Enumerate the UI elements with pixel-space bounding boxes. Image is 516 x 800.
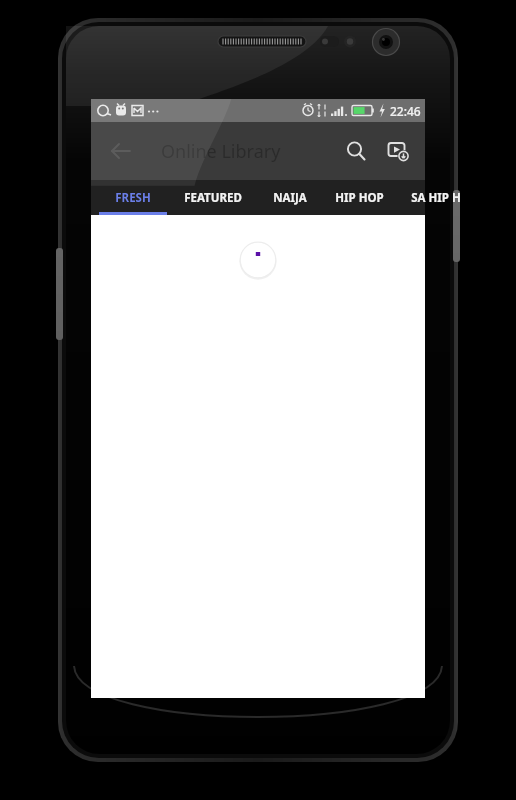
button[interactable]: HIP HOP <box>326 180 392 215</box>
staticText: FRESH <box>115 190 151 206</box>
staticText: NAIJA <box>273 190 307 206</box>
staticText: 22:46 <box>390 103 421 119</box>
staticText: Online Library <box>161 139 281 164</box>
button[interactable]: NAIJA <box>264 180 316 215</box>
button[interactable]: FRESH <box>105 180 161 215</box>
button[interactable]: Downloads <box>377 130 419 172</box>
staticText: FEATURED <box>184 190 242 206</box>
button[interactable]: FEATURED <box>173 180 253 215</box>
staticText: HIP HOP <box>335 190 384 206</box>
button[interactable]: SA HIP H <box>401 180 471 215</box>
button[interactable]: Search <box>335 130 377 172</box>
staticText: SA HIP H <box>411 190 461 206</box>
button[interactable]: Back <box>99 129 143 173</box>
